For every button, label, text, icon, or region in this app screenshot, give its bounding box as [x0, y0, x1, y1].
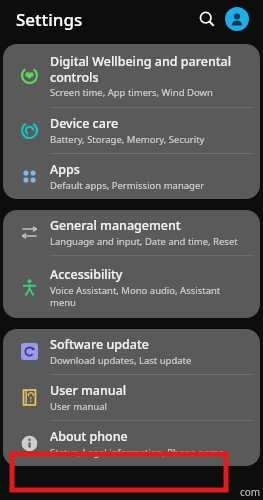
staticText: Device care — [50, 115, 119, 132]
staticText: User manual — [50, 400, 107, 413]
staticText: Download updates, Last update — [50, 354, 192, 367]
button[interactable]: Apps — [3, 154, 260, 199]
button[interactable]: Accessibility — [3, 256, 260, 318]
button[interactable]: Digital Wellbeing and parental controls — [3, 44, 260, 107]
staticText: General management — [50, 217, 181, 234]
button[interactable]: User manual — [3, 375, 260, 420]
staticText: Default apps, Permission manager — [50, 179, 205, 192]
button[interactable]: Search — [193, 5, 221, 33]
staticText: Screen time, App timers, Wind Down — [50, 86, 213, 99]
staticText: com — [240, 485, 261, 499]
staticText: Accessibility — [50, 266, 123, 283]
button[interactable]: About phone — [3, 421, 260, 466]
staticText: Status, Legal information, Phone name — [50, 446, 224, 459]
button[interactable]: Account — [225, 7, 249, 31]
staticText: Language and input, Date and time, Reset — [50, 235, 238, 248]
button[interactable]: Software update — [3, 329, 260, 374]
staticText: Digital Wellbeing and parental controls — [50, 53, 232, 85]
button[interactable]: Device care — [3, 108, 260, 153]
staticText: Voice Assistant, Mono audio, Assistant m… — [50, 284, 221, 309]
staticText: About phone — [50, 428, 128, 445]
staticText: Software update — [50, 336, 149, 353]
staticText: Battery, Storage, Memory, Security — [50, 133, 205, 146]
button[interactable]: General management — [3, 210, 260, 255]
staticText: User manual — [50, 382, 127, 399]
staticText: Settings — [16, 8, 83, 31]
staticText: Apps — [50, 161, 80, 178]
